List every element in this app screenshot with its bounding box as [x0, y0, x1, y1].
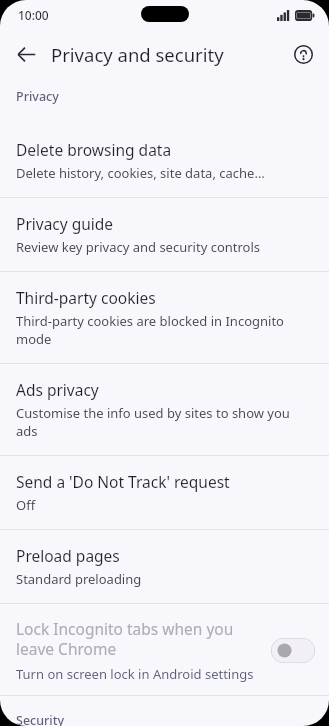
button[interactable]: Preload pages [0, 530, 329, 603]
button[interactable]: Delete browsing data [0, 124, 329, 197]
staticText: Privacy and security [51, 42, 224, 67]
staticText: Delete browsing data [16, 139, 172, 160]
staticText: 10:00 [18, 7, 49, 23]
button[interactable]: Lock Incognito tabs when you leave Chrom… [0, 604, 329, 695]
button[interactable]: Third-party cookies [0, 272, 329, 363]
button[interactable]: Help [283, 34, 323, 74]
button[interactable]: Back [6, 34, 46, 74]
staticText: Delete history, cookies, site data, cach… [16, 164, 265, 182]
staticText: Privacy guide [16, 213, 114, 234]
staticText: Security [16, 712, 65, 726]
staticText: Preload pages [16, 545, 120, 566]
button[interactable]: Privacy guide [0, 198, 329, 271]
button[interactable]: Lock Incognito tabs toggle [271, 638, 315, 663]
staticText: Third-party cookies are blocked in Incog… [16, 312, 313, 348]
staticText: Lock Incognito tabs when you leave Chrom… [16, 618, 261, 660]
staticText: Ads privacy [16, 379, 99, 400]
button[interactable]: Send a 'Do Not Track' request [0, 456, 329, 529]
staticText: Customise the info used by sites to show… [16, 404, 313, 440]
staticText: Off [16, 496, 36, 514]
staticText: Standard preloading [16, 570, 142, 588]
staticText: Third-party cookies [16, 287, 156, 308]
staticText: Review key privacy and security controls [16, 238, 261, 256]
staticText: Send a 'Do Not Track' request [16, 471, 230, 492]
staticText: Turn on screen lock in Android settings [16, 665, 254, 683]
button[interactable]: Ads privacy [0, 364, 329, 455]
staticText: Privacy [16, 88, 59, 105]
